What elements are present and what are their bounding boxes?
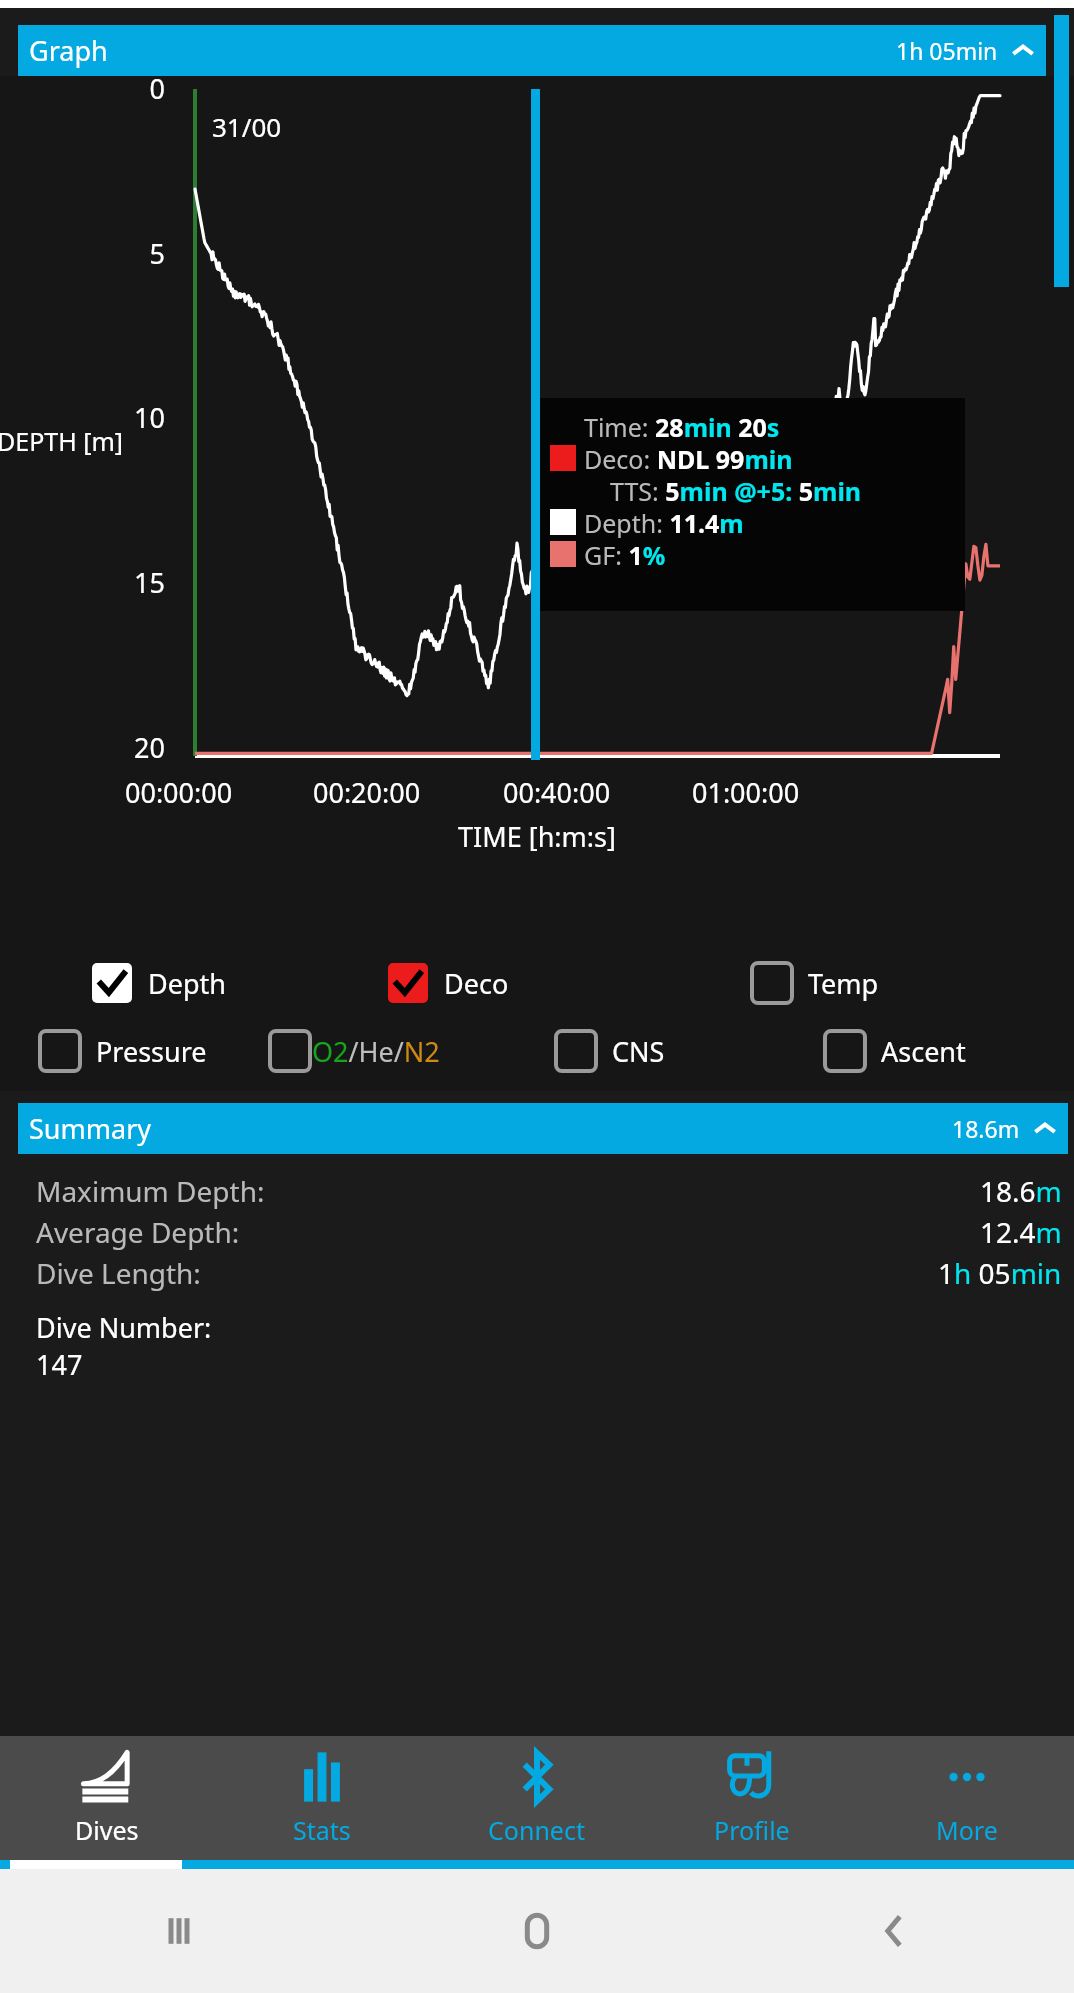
staticText: 18.6m (952, 1113, 1020, 1144)
button[interactable]: Temp (716, 961, 1074, 1005)
staticText: CNS (612, 1033, 665, 1070)
button[interactable]: Deco (358, 961, 716, 1005)
staticText: 18.6m (980, 1172, 1062, 1210)
staticText: Graph (29, 32, 108, 69)
staticText: Summary (29, 1110, 152, 1147)
button[interactable]: Summary (18, 1103, 1068, 1154)
button[interactable]: Ascent (805, 1029, 1074, 1073)
staticText: Dives (75, 1813, 139, 1847)
button[interactable]: Pressure (0, 1029, 268, 1073)
staticText: 20 (95, 729, 165, 766)
staticText: Depth: 11.4m (584, 506, 744, 538)
staticText: Pressure (96, 1033, 207, 1070)
staticText: Deco (444, 965, 509, 1002)
button[interactable]: Dives (0, 1736, 214, 1860)
staticText: TIME [h:m:s] (0, 818, 1074, 855)
staticText: 00:20:00 (313, 774, 421, 811)
other: Connect (509, 1749, 565, 1805)
other: More (939, 1749, 995, 1805)
staticText: Average Depth: (36, 1213, 240, 1251)
staticText: GF: 1% (584, 538, 666, 570)
staticText: 31/00 (212, 109, 282, 144)
staticText: Deco: NDL 99min (584, 442, 793, 474)
button[interactable]: More (859, 1736, 1074, 1860)
staticText: 0 (95, 70, 165, 107)
button[interactable]: Back (716, 1869, 1074, 1993)
button[interactable]: Stats (214, 1736, 429, 1860)
staticText: Ascent (881, 1033, 966, 1070)
staticText: Depth (148, 965, 226, 1002)
staticText: 12.4m (980, 1213, 1062, 1251)
button[interactable]: CNS (536, 1029, 805, 1073)
staticText: Temp (808, 965, 879, 1002)
staticText: 1h 05min (938, 1254, 1062, 1292)
staticText: 00:00:00 (125, 774, 233, 811)
button[interactable]: Home (358, 1869, 716, 1993)
staticText: Stats (293, 1813, 351, 1847)
staticText: 00:40:00 (503, 774, 611, 811)
staticText: More (936, 1813, 998, 1847)
button[interactable]: O2/He/N2 (268, 1029, 536, 1073)
button[interactable]: Graph (18, 25, 1046, 76)
staticText: 01:00:00 (692, 774, 800, 811)
staticText: O2/He/N2 (312, 1033, 440, 1070)
button[interactable]: Connect (429, 1736, 644, 1860)
button[interactable]: Profile (644, 1736, 859, 1860)
staticText: DEPTH [m] (0, 424, 124, 458)
button[interactable]: Depth (0, 961, 358, 1005)
button[interactable]: Recents (0, 1869, 358, 1993)
staticText: Connect (488, 1813, 585, 1847)
staticText: 1h 05min (896, 35, 998, 66)
staticText: Time: 28min 20s (584, 410, 780, 442)
staticText: Maximum Depth: (36, 1172, 265, 1210)
staticText: TTS: 5min @+5: 5min (610, 474, 862, 506)
staticText: 15 (95, 564, 165, 601)
staticText: 10 (95, 399, 165, 436)
staticText: Dive Length: (36, 1254, 201, 1292)
staticText: Profile (714, 1813, 790, 1847)
staticText: 147 (36, 1346, 83, 1383)
staticText: 5 (95, 235, 165, 272)
staticText: Dive Number: (36, 1309, 212, 1346)
